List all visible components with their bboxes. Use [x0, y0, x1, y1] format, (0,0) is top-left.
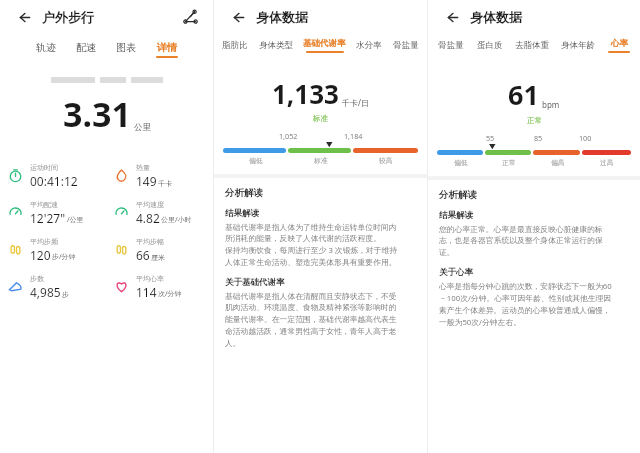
staticText: 1,184	[344, 131, 363, 141]
staticText: 平均步幅	[136, 237, 164, 246]
button[interactable]: 平均速度	[106, 194, 213, 231]
button[interactable]: 骨盐量	[391, 38, 421, 53]
staticText: 标准	[313, 114, 328, 123]
staticText: 关于心率	[439, 267, 473, 278]
staticText: 热量	[136, 163, 150, 172]
button[interactable]: Back	[227, 7, 247, 27]
button[interactable]: 平均心率	[106, 268, 213, 305]
button[interactable]: 基础代谢率	[301, 36, 348, 55]
staticText: 厘米	[151, 253, 165, 262]
staticText: bpm	[542, 99, 560, 110]
staticText: 脂肪比	[222, 40, 248, 51]
staticText: 正常	[502, 158, 516, 167]
staticText: 偏高	[551, 158, 565, 167]
staticText: 85	[534, 133, 543, 143]
staticText: 149	[136, 173, 157, 189]
staticText: 关于基础代谢率	[225, 277, 285, 288]
button[interactable]: 去脂体重	[513, 38, 551, 53]
button[interactable]: Back	[13, 7, 33, 27]
staticText: 公里	[134, 122, 151, 133]
staticText: 平均心率	[136, 274, 164, 283]
staticText: 61	[508, 76, 539, 113]
staticText: 较高	[379, 156, 393, 165]
staticText: 结果解读	[439, 210, 473, 221]
staticText: 分析解读	[439, 189, 477, 201]
staticText: 次/分钟	[158, 289, 182, 299]
staticText: 轨迹	[36, 41, 56, 54]
staticText: 运动时间	[30, 163, 58, 172]
staticText: 骨盐量	[438, 40, 464, 51]
staticText: 去脂体重	[515, 40, 549, 51]
staticText: 1,052	[279, 131, 298, 141]
staticText: 基础代谢率是指人体在清醒而且安静状态下，不受 肌肉活动、环境温度、食物及精神紧张…	[225, 291, 397, 348]
button[interactable]: 轨迹	[34, 39, 58, 56]
staticText: 114	[136, 284, 157, 300]
button[interactable]: 水分率	[354, 38, 384, 53]
staticText: 3.31	[63, 91, 131, 137]
staticText: 标准	[314, 156, 328, 165]
staticText: 结果解读	[225, 208, 259, 219]
staticText: 偏低	[249, 156, 263, 165]
staticText: 身体数据	[470, 9, 522, 25]
staticText: 1,133	[272, 76, 339, 111]
staticText: 图表	[116, 41, 136, 54]
staticText: 4,985	[30, 284, 61, 300]
button[interactable]: 配速	[74, 39, 98, 56]
staticText: 00:41:12	[30, 173, 78, 189]
staticText: 过高	[600, 158, 614, 167]
button[interactable]: 脂肪比	[220, 38, 250, 53]
staticText: 基础代谢率是指人体为了维持生命运转单位时间内 所消耗的能量，反映了人体代谢的活跃…	[225, 222, 398, 267]
button[interactable]: 身体年龄	[559, 38, 597, 53]
staticText: 身体类型	[259, 40, 293, 51]
staticText: 正常	[527, 116, 542, 125]
staticText: 步数	[30, 274, 44, 283]
staticText: 步	[62, 290, 69, 299]
button[interactable]: 平均配速	[0, 194, 106, 231]
staticText: 66	[136, 247, 150, 263]
staticText: 骨盐量	[393, 40, 419, 51]
staticText: 身体年龄	[561, 40, 595, 51]
staticText: 蛋白质	[477, 40, 503, 51]
staticText: 详情	[157, 41, 177, 54]
staticText: 心率	[611, 38, 628, 49]
button[interactable]: 心率	[606, 36, 632, 55]
button[interactable]: 骨盐量	[436, 38, 466, 53]
staticText: 心率是指每分钟心跳的次数，安静状态下一般为60 －100次/分钟。心率可因年龄、…	[439, 281, 612, 327]
staticText: 千卡/日	[342, 97, 369, 108]
staticText: 户外步行	[42, 9, 94, 25]
staticText: 100	[579, 133, 592, 143]
staticText: 分析解读	[225, 187, 263, 199]
staticText: 4.82	[136, 210, 160, 226]
button[interactable]: 图表	[114, 39, 138, 56]
staticText: 12'27"	[30, 210, 66, 226]
staticText: 水分率	[356, 40, 382, 51]
button[interactable]: 步数	[0, 268, 106, 305]
button[interactable]: Back	[441, 7, 461, 27]
button[interactable]: 蛋白质	[475, 38, 505, 53]
button[interactable]: 详情	[154, 39, 180, 60]
staticText: 55	[486, 133, 495, 143]
staticText: /公里	[67, 215, 84, 225]
staticText: 平均步频	[30, 237, 58, 246]
staticText: 120	[30, 247, 51, 263]
button[interactable]: 运动时间	[0, 157, 106, 194]
button[interactable]: 热量	[106, 157, 213, 194]
button[interactable]: 身体类型	[257, 38, 295, 53]
staticText: 配速	[76, 41, 96, 54]
staticText: 基础代谢率	[303, 38, 346, 49]
staticText: 平均配速	[30, 200, 58, 209]
button[interactable]: 平均步频	[0, 231, 106, 268]
staticText: 您的心率正常。心率是最直接反映心脏健康的标 志，也是各器官系统以及整个身体正常运…	[439, 224, 603, 257]
staticText: 偏低	[454, 158, 468, 167]
staticText: 公里/小时	[161, 215, 192, 225]
button[interactable]: Share route	[180, 7, 200, 27]
staticText: 千卡	[158, 179, 172, 188]
staticText: 步/分钟	[52, 252, 76, 262]
staticText: 身体数据	[256, 9, 308, 25]
button[interactable]: 平均步幅	[106, 231, 213, 268]
staticText: 平均速度	[136, 200, 164, 209]
